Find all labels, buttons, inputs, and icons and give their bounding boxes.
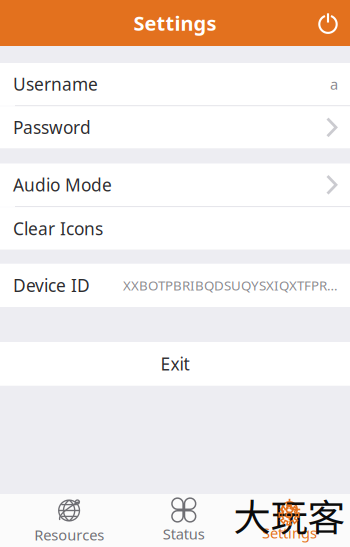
staticText: 大玩客	[233, 488, 344, 542]
staticText: Audio Mode	[13, 173, 112, 196]
button[interactable]: Device ID	[0, 264, 350, 307]
staticText: Username	[13, 73, 98, 96]
staticText: Clear Icons	[13, 217, 103, 240]
button[interactable]: Resources	[0, 494, 139, 547]
staticText: Resources	[34, 525, 104, 544]
button[interactable]: Exit	[0, 342, 350, 386]
staticText: Password	[13, 116, 91, 139]
button[interactable]: Audio Mode	[0, 163, 350, 206]
staticText: Status	[163, 524, 205, 543]
button[interactable]: Status	[139, 494, 229, 547]
button[interactable]: Password	[0, 106, 350, 148]
button[interactable]: Username	[0, 63, 350, 105]
button[interactable]: Settings	[229, 494, 350, 547]
staticText: Settings	[262, 523, 317, 542]
button[interactable]: Clear Icons	[0, 207, 350, 250]
button[interactable]: Power	[318, 0, 350, 46]
staticText: Exit	[160, 352, 189, 375]
staticText: XXBOTPBRIBQDSUQYSXIQXTFPR…	[123, 276, 338, 294]
staticText: Settings	[133, 10, 216, 36]
staticText: a	[330, 74, 338, 94]
staticText: Device ID	[13, 274, 90, 297]
